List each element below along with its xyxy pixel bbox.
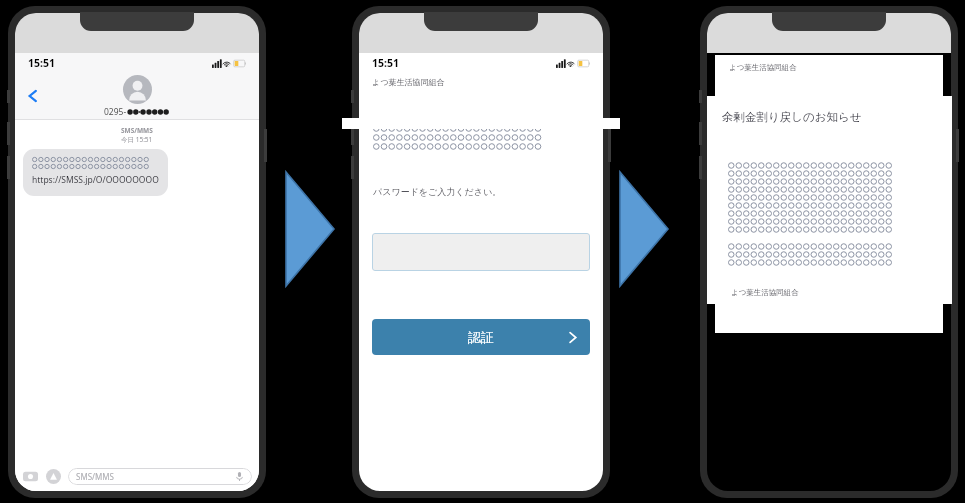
button[interactable]: Password field [372, 233, 590, 271]
staticText: SMS/MMS [76, 471, 114, 482]
staticText: よつ葉生活協同組合 [372, 77, 445, 87]
button[interactable]: App Store [45, 468, 62, 485]
staticText: https://SMSS.jp/O/OOOOOOOO [32, 174, 159, 186]
staticText: 認証 [468, 329, 494, 345]
button[interactable]: 認証 [372, 319, 590, 355]
staticText: SMS/MMS [121, 126, 153, 135]
button[interactable]: https://SMSS.jp/O/OOOOOOOO [23, 149, 168, 196]
staticText: パスワードをご入力ください。 [373, 186, 502, 197]
staticText: よつ葉生活協同組合 [729, 63, 797, 72]
button[interactable]: Camera [22, 468, 39, 485]
staticText: 15:51 [28, 56, 55, 70]
button[interactable]: SMS/MMS [68, 468, 252, 485]
staticText: 余剰金割り戻しのお知らせ [722, 110, 862, 124]
staticText: 15:51 [372, 56, 399, 70]
button[interactable]: Back [20, 83, 46, 109]
staticText: よつ葉生活協同組合 [731, 288, 799, 297]
staticText: 今日 15:51 [121, 135, 153, 144]
staticText: 0295- [104, 106, 127, 118]
